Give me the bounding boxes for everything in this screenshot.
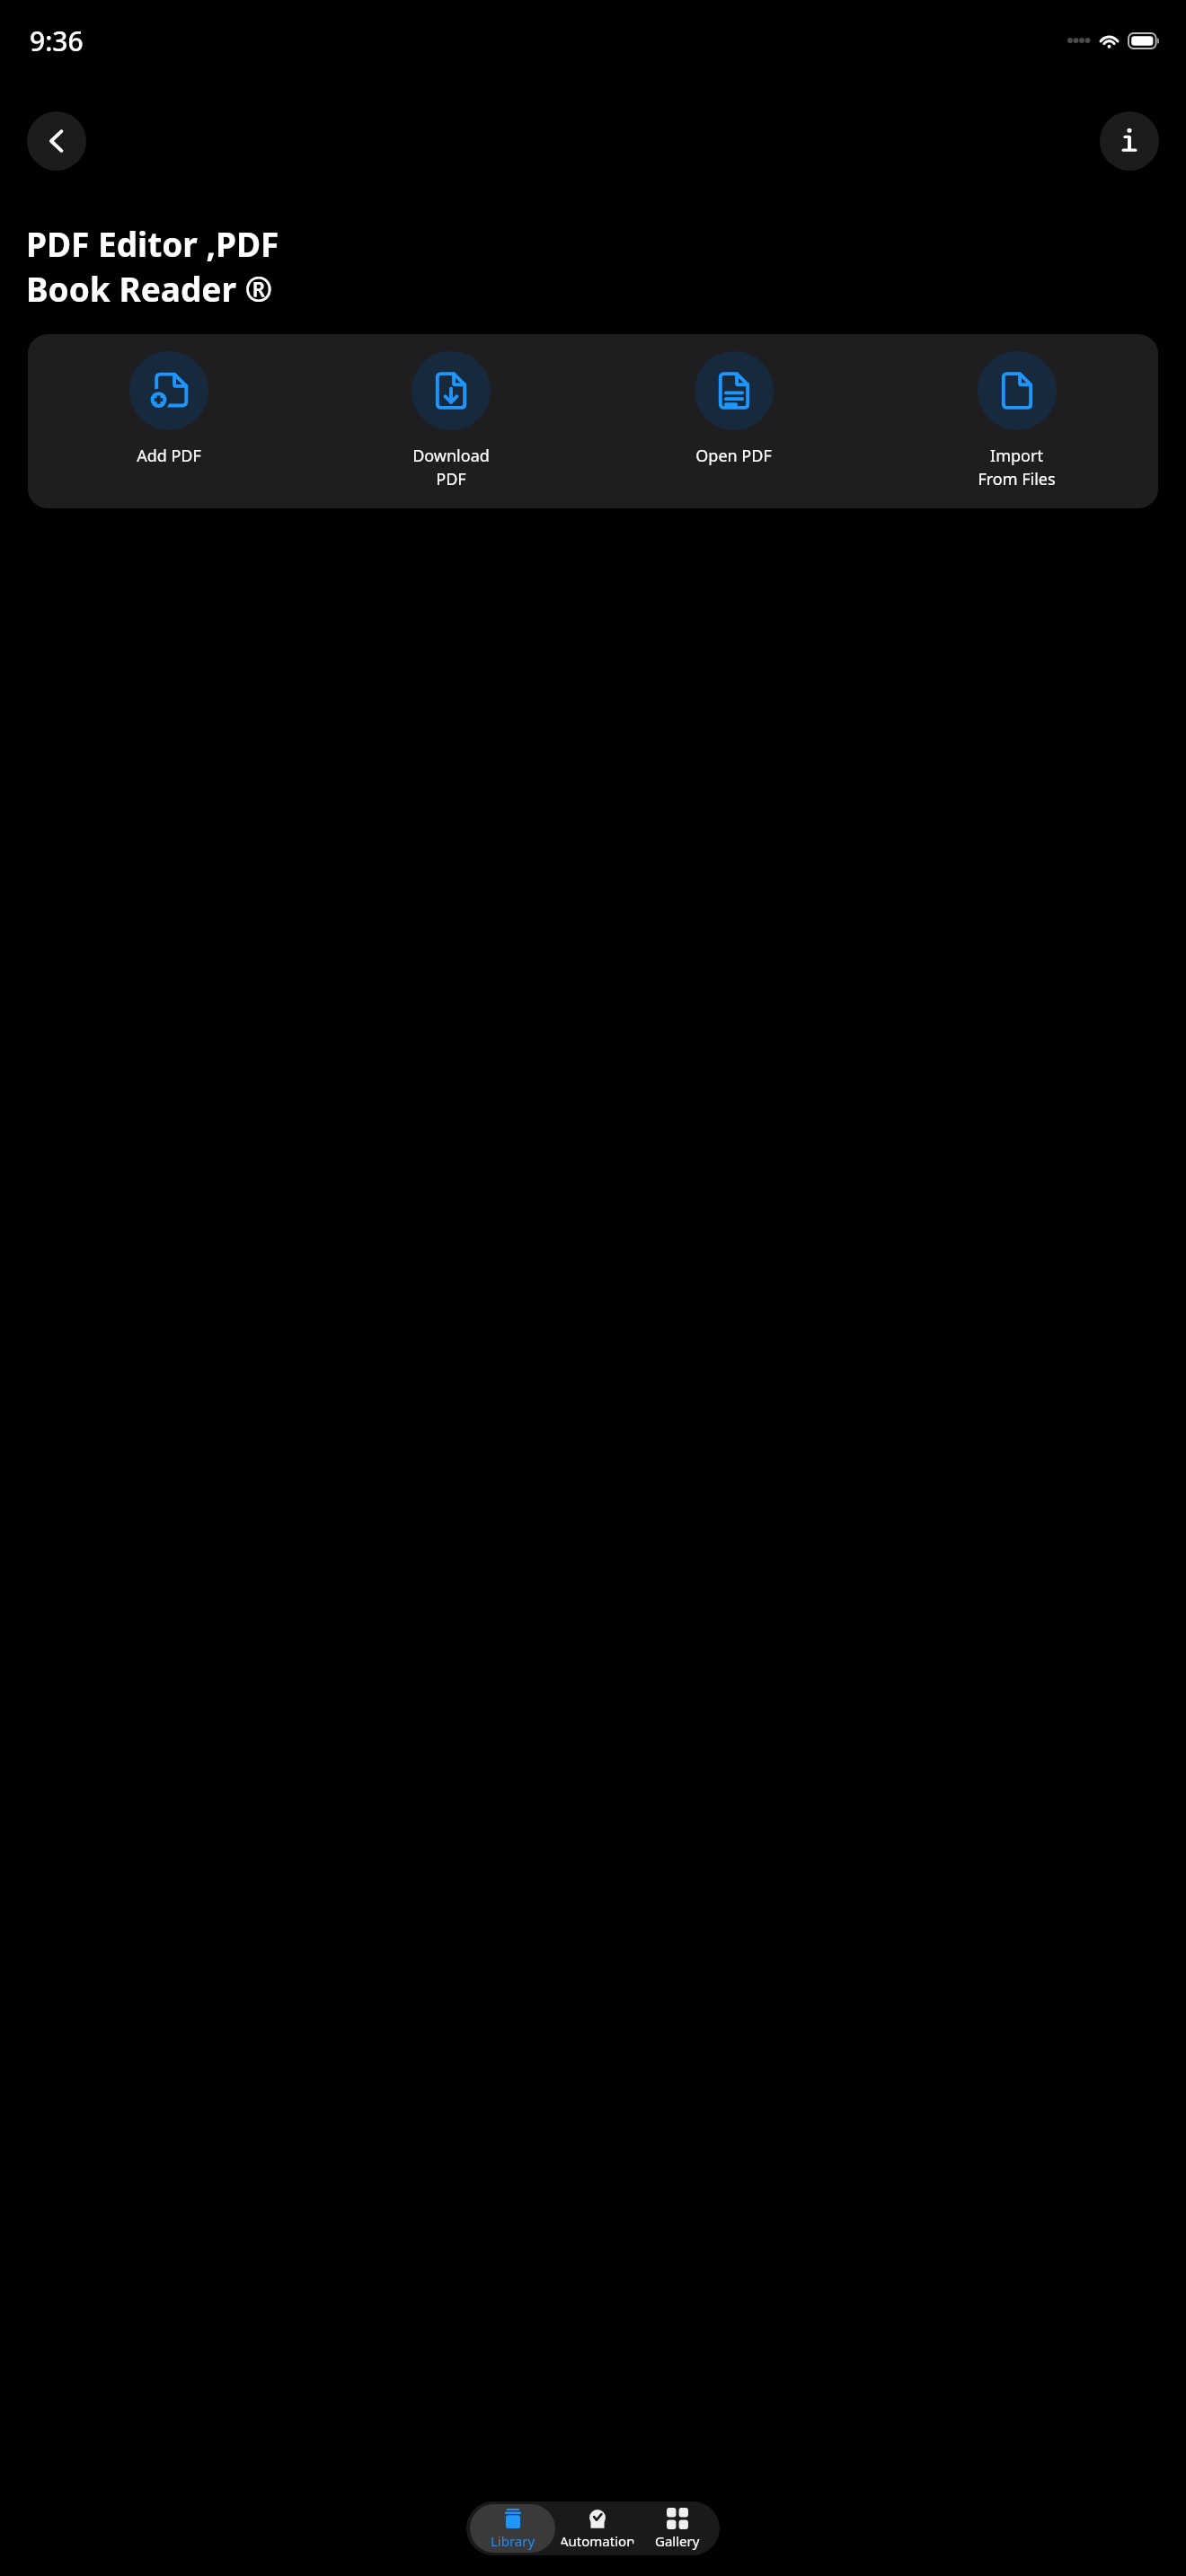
button[interactable]: Open PDF [592, 351, 875, 467]
staticText: Add PDF [137, 445, 201, 467]
staticText: PDF Editor ,PDF [26, 221, 279, 266]
staticText: Automation [560, 2532, 635, 2550]
staticText: Import From Files [978, 445, 1056, 490]
staticText: 9:36 [30, 22, 84, 59]
button[interactable]: Info [1100, 111, 1159, 171]
staticText: Book Reader ® [26, 266, 273, 311]
button[interactable]: Gallery [639, 2504, 716, 2553]
button[interactable]: Add PDF [28, 351, 310, 467]
button[interactable]: Back [27, 111, 86, 171]
button[interactable]: Download PDF [310, 351, 592, 490]
button[interactable]: Import From Files [875, 351, 1158, 490]
staticText: Open PDF [695, 445, 772, 467]
staticText: Download PDF [412, 445, 490, 490]
button[interactable]: Automation [555, 2504, 639, 2553]
staticText: Gallery [655, 2532, 700, 2550]
staticText: Library [491, 2532, 535, 2550]
button[interactable]: Library [470, 2504, 555, 2553]
